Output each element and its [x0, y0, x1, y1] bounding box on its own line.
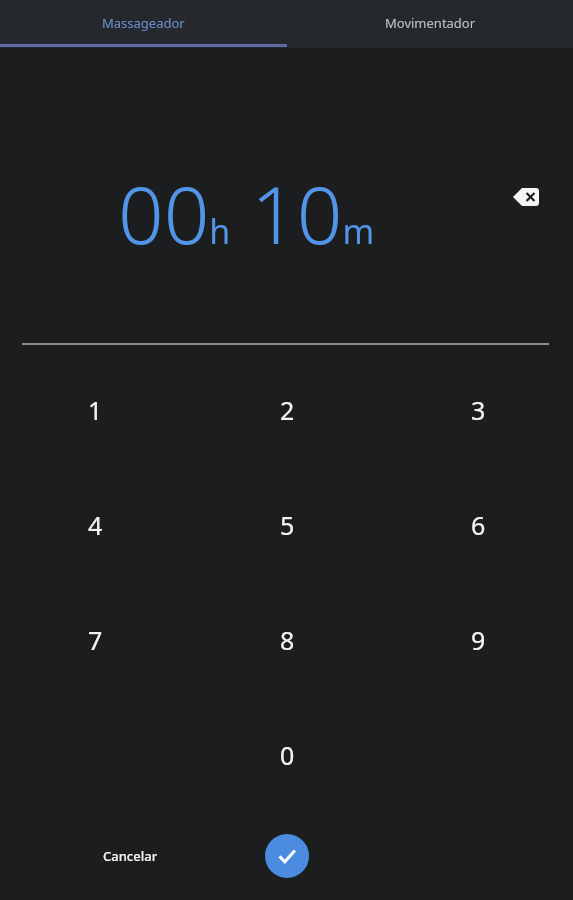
staticText: Movimentador — [385, 14, 476, 32]
button[interactable]: 1 — [20, 362, 170, 458]
button[interactable]: 9 — [403, 592, 553, 688]
staticText: Cancelar — [103, 847, 158, 865]
staticText: 8 — [280, 623, 295, 657]
staticText: 9 — [471, 623, 486, 657]
button[interactable]: Movimentador — [287, 0, 573, 46]
button[interactable]: 2 — [212, 362, 362, 458]
staticText: Massageador — [102, 14, 185, 32]
staticText: 00h 10m — [118, 158, 375, 248]
button[interactable]: Confirm — [265, 834, 309, 878]
staticText: 4 — [88, 508, 103, 542]
button[interactable]: 6 — [403, 477, 553, 573]
button[interactable]: 7 — [20, 592, 170, 688]
button[interactable]: 4 — [20, 477, 170, 573]
staticText: 1 — [88, 393, 103, 427]
button[interactable]: 5 — [212, 477, 362, 573]
button[interactable]: 0 — [212, 707, 362, 803]
button[interactable]: Cancelar — [75, 833, 185, 879]
staticText: 2 — [280, 393, 295, 427]
button[interactable]: Massageador — [0, 0, 287, 46]
button[interactable]: Backspace — [502, 173, 550, 221]
staticText: 7 — [88, 623, 103, 657]
button[interactable]: 8 — [212, 592, 362, 688]
staticText: 6 — [471, 508, 486, 542]
staticText: 5 — [280, 508, 295, 542]
button[interactable]: 3 — [403, 362, 553, 458]
staticText: 3 — [471, 393, 486, 427]
staticText: 0 — [280, 738, 295, 772]
